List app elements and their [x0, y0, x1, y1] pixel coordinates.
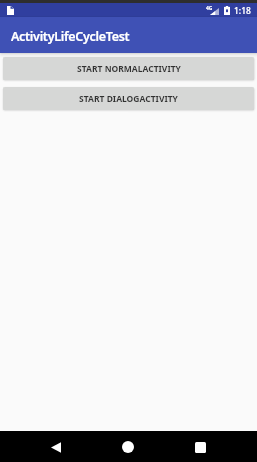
other: Battery	[224, 6, 230, 15]
button[interactable]: Back	[44, 435, 68, 459]
staticText: START DIALOGACTIVITY	[79, 93, 178, 105]
staticText: 1:18	[234, 5, 251, 17]
other: Notification	[7, 6, 14, 15]
button[interactable]: START DIALOGACTIVITY	[3, 87, 254, 110]
staticText: ActivityLifeCycleTest	[11, 28, 130, 45]
button[interactable]: Recent apps	[188, 435, 212, 459]
other: Mobile signal	[210, 8, 219, 15]
staticText: 4G	[206, 5, 213, 12]
staticText: START NORMALACTIVITY	[77, 63, 181, 75]
button[interactable]: START NORMALACTIVITY	[3, 57, 254, 80]
button[interactable]: Home	[116, 435, 140, 459]
